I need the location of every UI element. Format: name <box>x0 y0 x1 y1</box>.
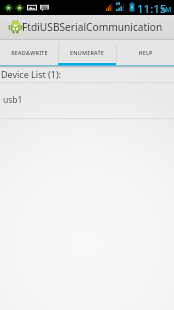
staticText: AM <box>161 5 172 14</box>
button[interactable]: HELP <box>116 40 174 68</box>
button[interactable]: ENUMERATE <box>58 40 116 68</box>
staticText: usb1 <box>3 94 23 106</box>
button[interactable]: READ&WRITE <box>0 40 58 68</box>
staticText: FtdiUSBSerialCommunication <box>22 20 163 34</box>
button[interactable]: usb1 <box>0 83 174 118</box>
staticText: HELP <box>138 49 153 56</box>
staticText: Device List (1): <box>1 68 61 79</box>
staticText: 11:15 <box>137 1 167 16</box>
staticText: ENUMERATE <box>70 49 104 56</box>
staticText: READ&WRITE <box>11 49 48 56</box>
